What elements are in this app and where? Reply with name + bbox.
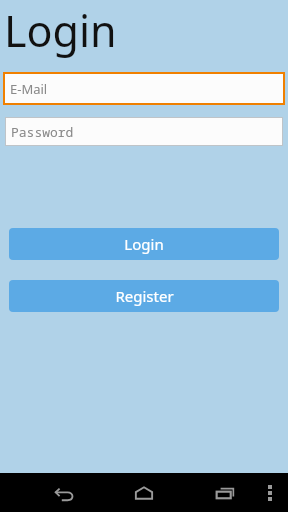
button[interactable]: Back: [46, 475, 82, 511]
button[interactable]: Login: [9, 228, 279, 260]
staticText: Login: [4, 1, 117, 60]
staticText: E-Mail: [10, 80, 48, 98]
button[interactable]: Register: [9, 280, 279, 312]
staticText: Register: [115, 286, 174, 306]
staticText: Password: [11, 123, 74, 141]
button[interactable]: More options: [254, 477, 286, 509]
button[interactable]: Recent apps: [207, 475, 243, 511]
button[interactable]: E-Mail: [3, 72, 285, 105]
button[interactable]: Home: [126, 475, 162, 511]
staticText: Login: [124, 234, 164, 254]
button[interactable]: Password: [5, 117, 283, 146]
